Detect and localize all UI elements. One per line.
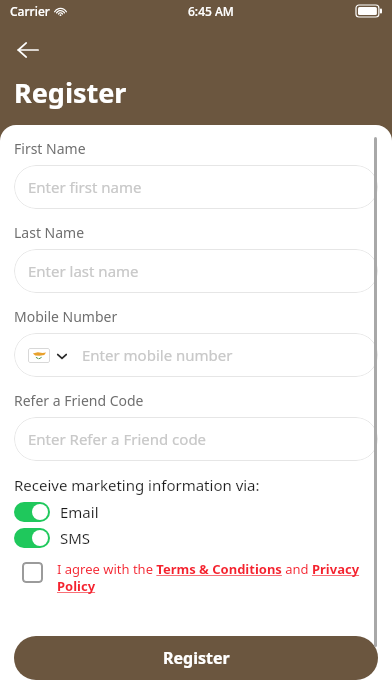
button[interactable]: Select country code	[28, 348, 68, 363]
button[interactable]: SMS	[14, 525, 91, 551]
button[interactable]: I agree with the Terms & Conditions and …	[14, 560, 378, 595]
staticText: Receive marketing information via:	[14, 475, 260, 495]
button[interactable]: Back	[6, 28, 50, 72]
staticText: Enter first name	[28, 177, 142, 197]
staticText: Enter Refer a Friend code	[28, 429, 207, 449]
staticText: Carrier	[10, 3, 50, 19]
staticText: Refer a Friend Code	[14, 391, 144, 410]
button[interactable]: Register	[14, 636, 378, 680]
button[interactable]: Select country code	[14, 333, 378, 377]
staticText: SMS	[60, 528, 91, 548]
staticText: Email	[60, 502, 99, 522]
staticText: First Name	[14, 139, 86, 158]
staticText: Register	[14, 74, 127, 111]
staticText: 6:45 AM	[188, 3, 234, 19]
button[interactable]: Enter first name	[14, 165, 378, 209]
button[interactable]: Email	[14, 499, 99, 525]
staticText: Enter mobile number	[82, 345, 233, 365]
staticText: I agree with the Terms & Conditions and …	[57, 560, 378, 595]
button[interactable]: Enter Refer a Friend code	[14, 417, 378, 461]
staticText: Enter last name	[28, 261, 139, 281]
staticText: Register	[163, 647, 230, 669]
button[interactable]: Enter last name	[14, 249, 378, 293]
staticText: Mobile Number	[14, 307, 118, 326]
staticText: Last Name	[14, 223, 85, 242]
